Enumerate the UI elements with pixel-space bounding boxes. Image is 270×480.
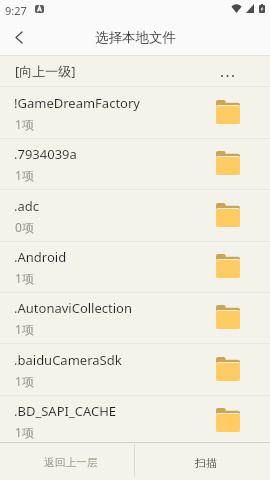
button[interactable]: More options [230,55,270,87]
staticText: 0项 [15,219,34,235]
button[interactable]: !GameDreamFactory [0,88,270,139]
staticText: .adc [14,197,40,215]
staticText: 1项 [15,116,34,132]
staticText: 1项 [15,270,34,286]
staticText: .baiduCameraSdk [14,351,122,369]
staticText: 1项 [15,424,34,440]
button[interactable]: 返回上一层 [0,443,134,480]
staticText: 扫描 [195,456,217,470]
button[interactable]: .BD_SAPI_CACHE [0,396,270,447]
staticText: .BD_SAPI_CACHE [14,402,117,420]
button[interactable]: .Android [0,242,270,293]
staticText: .AutonaviCollection [14,299,132,317]
staticText: .Android [14,248,67,266]
staticText: 1项 [15,373,34,389]
staticText: 1项 [15,321,34,337]
button[interactable]: .AutonaviCollection [0,293,270,344]
button[interactable]: Back [0,20,38,55]
staticText: !GameDreamFactory [14,94,140,112]
staticText: 选择本地文件 [95,29,176,46]
button[interactable]: [向上一级] [0,55,270,87]
button[interactable]: .baiduCameraSdk [0,345,270,396]
button[interactable]: .7934039a [0,139,270,190]
staticText: 9:27 [5,3,27,18]
staticText: 1项 [15,167,34,183]
staticText: [向上一级] [15,62,76,80]
staticText: 返回上一层 [44,456,98,469]
staticText: .7934039a [14,145,77,163]
button[interactable]: .adc [0,191,270,242]
button[interactable]: 扫描 [135,443,270,480]
